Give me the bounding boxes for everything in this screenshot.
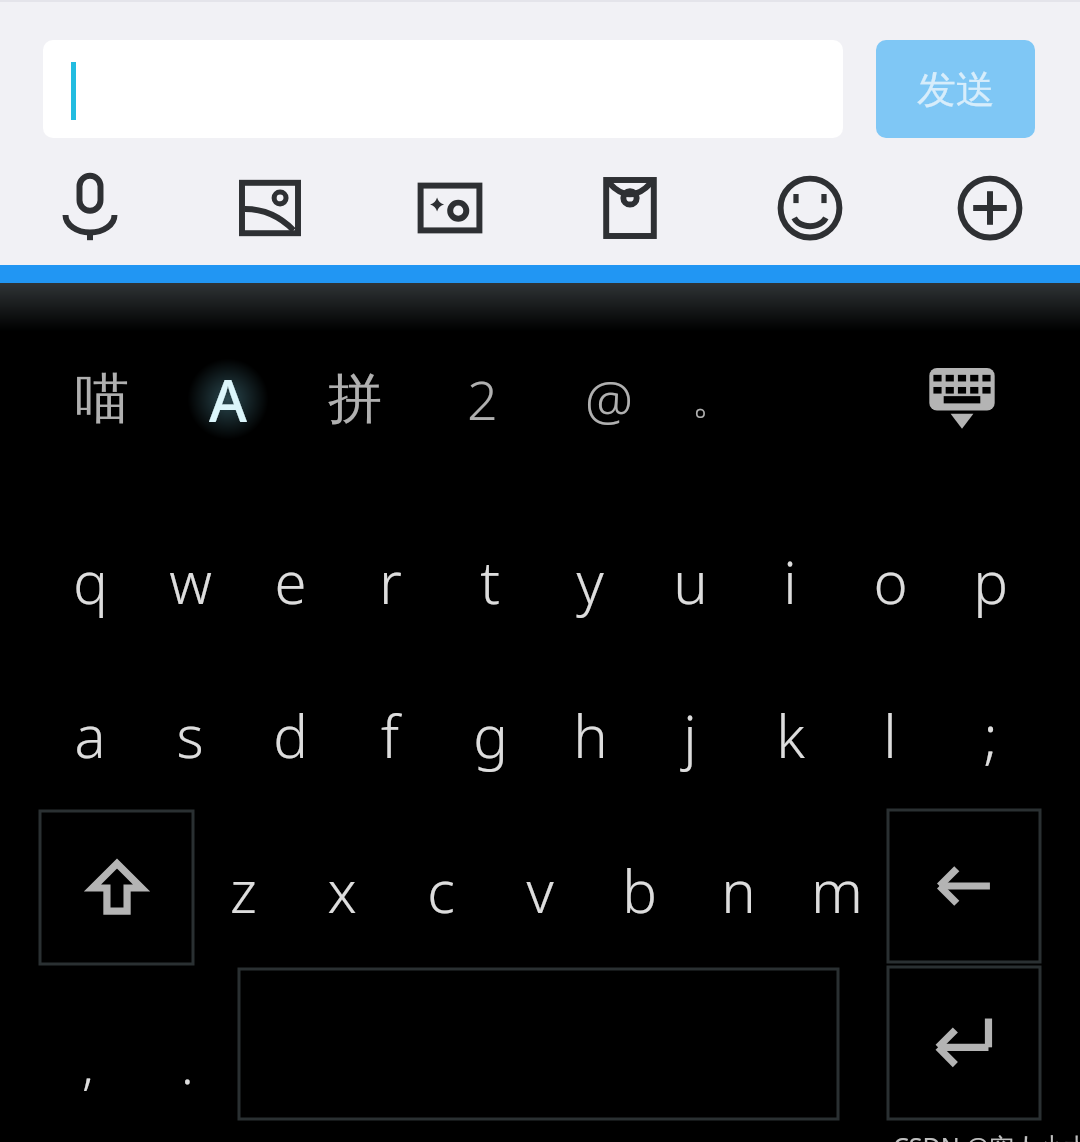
button[interactable]: z [198, 842, 288, 938]
button[interactable]: h [545, 687, 635, 783]
staticText: m [811, 851, 863, 930]
button[interactable]: q [45, 533, 135, 629]
button[interactable]: ; [945, 687, 1035, 783]
staticText: s [176, 696, 204, 775]
button[interactable]: p [945, 533, 1035, 629]
button[interactable]: Photo [224, 162, 316, 254]
button[interactable]: Space [239, 969, 838, 1119]
staticText: , [82, 1028, 94, 1099]
staticText: h [573, 696, 608, 775]
button[interactable]: g [445, 687, 535, 783]
staticText: w [169, 542, 212, 621]
staticText: e [274, 542, 307, 621]
button[interactable] [43, 40, 843, 138]
staticText: c [427, 851, 455, 930]
staticText: v [526, 851, 554, 930]
button[interactable]: t [445, 533, 535, 629]
staticText: ; [983, 696, 998, 775]
staticText: . [181, 1028, 194, 1099]
button[interactable]: Emoji [764, 162, 856, 254]
button[interactable]: i [745, 533, 835, 629]
staticText: k [776, 696, 805, 775]
button[interactable]: e [245, 533, 335, 629]
staticText: b [622, 851, 657, 930]
button[interactable]: u [645, 533, 735, 629]
staticText: u [673, 542, 708, 621]
staticText: r [379, 542, 402, 621]
staticText: A [209, 360, 247, 439]
staticText: y [576, 542, 604, 621]
button[interactable]: o [845, 533, 935, 629]
staticText: x [327, 851, 357, 930]
button[interactable]: More [944, 162, 1036, 254]
button[interactable]: j [645, 687, 735, 783]
staticText: p [973, 542, 1008, 621]
button[interactable]: v [495, 842, 585, 938]
button[interactable]: l [845, 687, 935, 783]
staticText: CSDN @穷人小水滴 [893, 1129, 1080, 1142]
staticText: 发送 [917, 65, 995, 114]
staticText: g [473, 696, 508, 775]
button[interactable]: A [184, 355, 272, 443]
button[interactable]: d [245, 687, 335, 783]
button[interactable]: @ [565, 355, 653, 443]
button[interactable]: 喵 [58, 355, 146, 443]
staticText: n [721, 851, 756, 930]
button[interactable]: k [745, 687, 835, 783]
staticText: a [74, 696, 106, 775]
staticText: l [883, 696, 897, 775]
button[interactable]: . [143, 1019, 231, 1107]
button[interactable]: n [693, 842, 783, 938]
staticText: 2 [467, 362, 498, 436]
staticText: t [480, 542, 500, 621]
button[interactable]: 拼 [311, 355, 399, 443]
button[interactable]: x [297, 842, 387, 938]
button[interactable]: y [545, 533, 635, 629]
staticText: 拼 [328, 365, 382, 433]
button[interactable]: Enter [888, 967, 1040, 1119]
button[interactable]: r [345, 533, 435, 629]
staticText: @ [585, 362, 633, 436]
staticText: j [683, 696, 697, 775]
staticText: 喵 [75, 365, 129, 433]
button[interactable]: w [145, 533, 235, 629]
button[interactable]: Camera [404, 162, 496, 254]
staticText: 。 [692, 374, 732, 424]
button[interactable]: s [145, 687, 235, 783]
button[interactable]: Hide keyboard [916, 357, 1008, 449]
staticText: o [873, 542, 908, 621]
button[interactable]: a [45, 687, 135, 783]
button[interactable]: , [44, 1019, 132, 1107]
staticText: z [230, 851, 257, 930]
button[interactable]: Shift [40, 811, 193, 964]
button[interactable]: 发送 [876, 40, 1035, 138]
button[interactable]: m [792, 842, 882, 938]
staticText: i [783, 542, 797, 621]
button[interactable]: c [396, 842, 486, 938]
button[interactable]: Red packet [584, 162, 676, 254]
staticText: f [381, 696, 399, 775]
button[interactable]: b [594, 842, 684, 938]
button[interactable]: 。 [668, 355, 756, 443]
button[interactable]: 2 [438, 355, 526, 443]
staticText: d [273, 696, 308, 775]
button[interactable]: Voice [44, 162, 136, 254]
button[interactable]: f [345, 687, 435, 783]
button[interactable]: Backspace [888, 810, 1040, 962]
staticText: q [73, 542, 108, 621]
